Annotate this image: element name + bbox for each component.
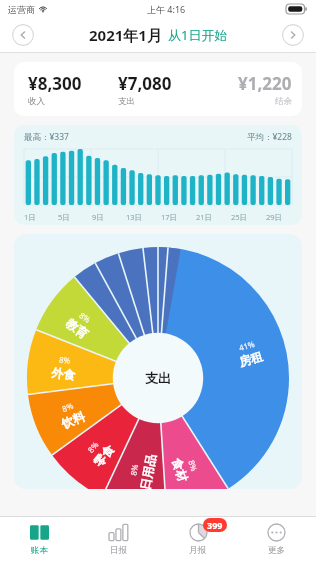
staticText: 月报: [189, 545, 206, 556]
staticText: ¥7,080: [118, 72, 172, 95]
button[interactable]: Next month: [282, 24, 304, 46]
staticText: 支出: [118, 96, 135, 107]
button[interactable]: ¥8,300: [14, 62, 302, 116]
staticText: 更多: [268, 545, 285, 556]
staticText: 9日: [92, 212, 104, 222]
staticText: 账本: [31, 545, 48, 556]
staticText: 21日: [196, 212, 213, 222]
staticText: 日报: [110, 545, 127, 556]
button[interactable]: 最高：¥337: [14, 125, 302, 225]
button[interactable]: 日报: [79, 517, 158, 562]
staticText: 运营商: [8, 4, 35, 15]
staticText: 29日: [266, 212, 283, 222]
button[interactable]: [14, 234, 302, 489]
button[interactable]: 更多: [237, 517, 316, 562]
staticText: 平均：¥228: [247, 131, 292, 143]
button[interactable]: 从1日开始: [168, 26, 228, 44]
button[interactable]: 账本: [0, 517, 79, 562]
staticText: 最高：¥337: [24, 131, 69, 143]
button[interactable]: 399: [158, 517, 237, 562]
staticText: 13日: [126, 212, 143, 222]
staticText: 17日: [161, 212, 178, 222]
staticText: 从1日开始: [168, 26, 228, 44]
staticText: 2021年1月: [89, 25, 162, 45]
staticText: 25日: [231, 212, 248, 222]
staticText: ¥1,220: [238, 72, 292, 95]
staticText: 上午 4:16: [147, 3, 186, 15]
staticText: ¥8,300: [28, 72, 82, 95]
staticText: 5日: [58, 212, 70, 222]
staticText: 1日: [24, 212, 36, 222]
staticText: 结余: [275, 96, 292, 107]
button[interactable]: Previous month: [12, 24, 34, 46]
staticText: 收入: [28, 96, 45, 107]
staticText: 399: [207, 519, 223, 531]
